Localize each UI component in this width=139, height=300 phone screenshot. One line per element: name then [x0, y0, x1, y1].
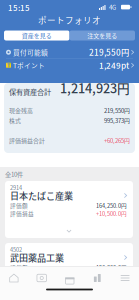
staticText: 1,249pt	[99, 59, 129, 71]
staticText: 保有資産合計	[9, 86, 51, 97]
staticText: 評価額	[10, 263, 28, 271]
button[interactable]: 特典	[56, 268, 83, 288]
button[interactable]: 買付可能額	[0, 46, 139, 58]
staticText: ポートフォリオ	[38, 14, 101, 26]
staticText: 219,550円	[89, 46, 129, 58]
staticText: +10,500.0円	[96, 209, 127, 217]
button[interactable]: 注文を見る	[69, 30, 135, 40]
staticText: 評価損益	[10, 209, 34, 217]
staticText: 日本たばこ産業	[10, 189, 73, 202]
staticText: 4G	[109, 3, 116, 11]
staticText: 注文を見る	[87, 31, 117, 40]
staticText: 評価額	[10, 201, 28, 209]
staticText: 1,214,923円	[60, 79, 130, 97]
staticText: 資産を見る	[22, 31, 52, 40]
staticText: 4502	[10, 245, 22, 253]
button[interactable]: ホーム	[0, 268, 28, 288]
button[interactable]: メニュー	[111, 268, 139, 288]
staticText: 164,250.0円	[96, 201, 127, 209]
staticText: 武田薬品工業	[10, 251, 64, 264]
button[interactable]: 取引	[28, 268, 56, 288]
staticText: 15:15	[8, 2, 30, 13]
staticText: T	[7, 61, 10, 69]
staticText: 全10件	[5, 170, 23, 178]
button[interactable]: T	[0, 59, 139, 71]
button[interactable]: 2914	[5, 181, 133, 238]
staticText: 995,373円	[104, 116, 130, 125]
button[interactable]: マーケット	[83, 268, 111, 288]
staticText: +4,500.0円	[99, 271, 127, 279]
button[interactable]: 資産を見る	[4, 30, 69, 40]
staticText: 現金残高	[9, 106, 33, 115]
staticText: 買付可能額	[13, 47, 48, 57]
staticText: +60,265円	[104, 136, 130, 145]
staticText: 株式	[9, 116, 21, 125]
staticText: 評価損益	[10, 271, 34, 279]
staticText: 156,300.0円	[96, 263, 127, 271]
button[interactable]: 4502	[5, 243, 133, 293]
staticText: 評価損益合計	[9, 136, 45, 145]
staticText: Tポイント	[13, 60, 45, 70]
staticText: 219,550円	[104, 106, 130, 115]
button[interactable]: 展開	[58, 226, 80, 236]
staticText: 2914	[10, 183, 22, 191]
